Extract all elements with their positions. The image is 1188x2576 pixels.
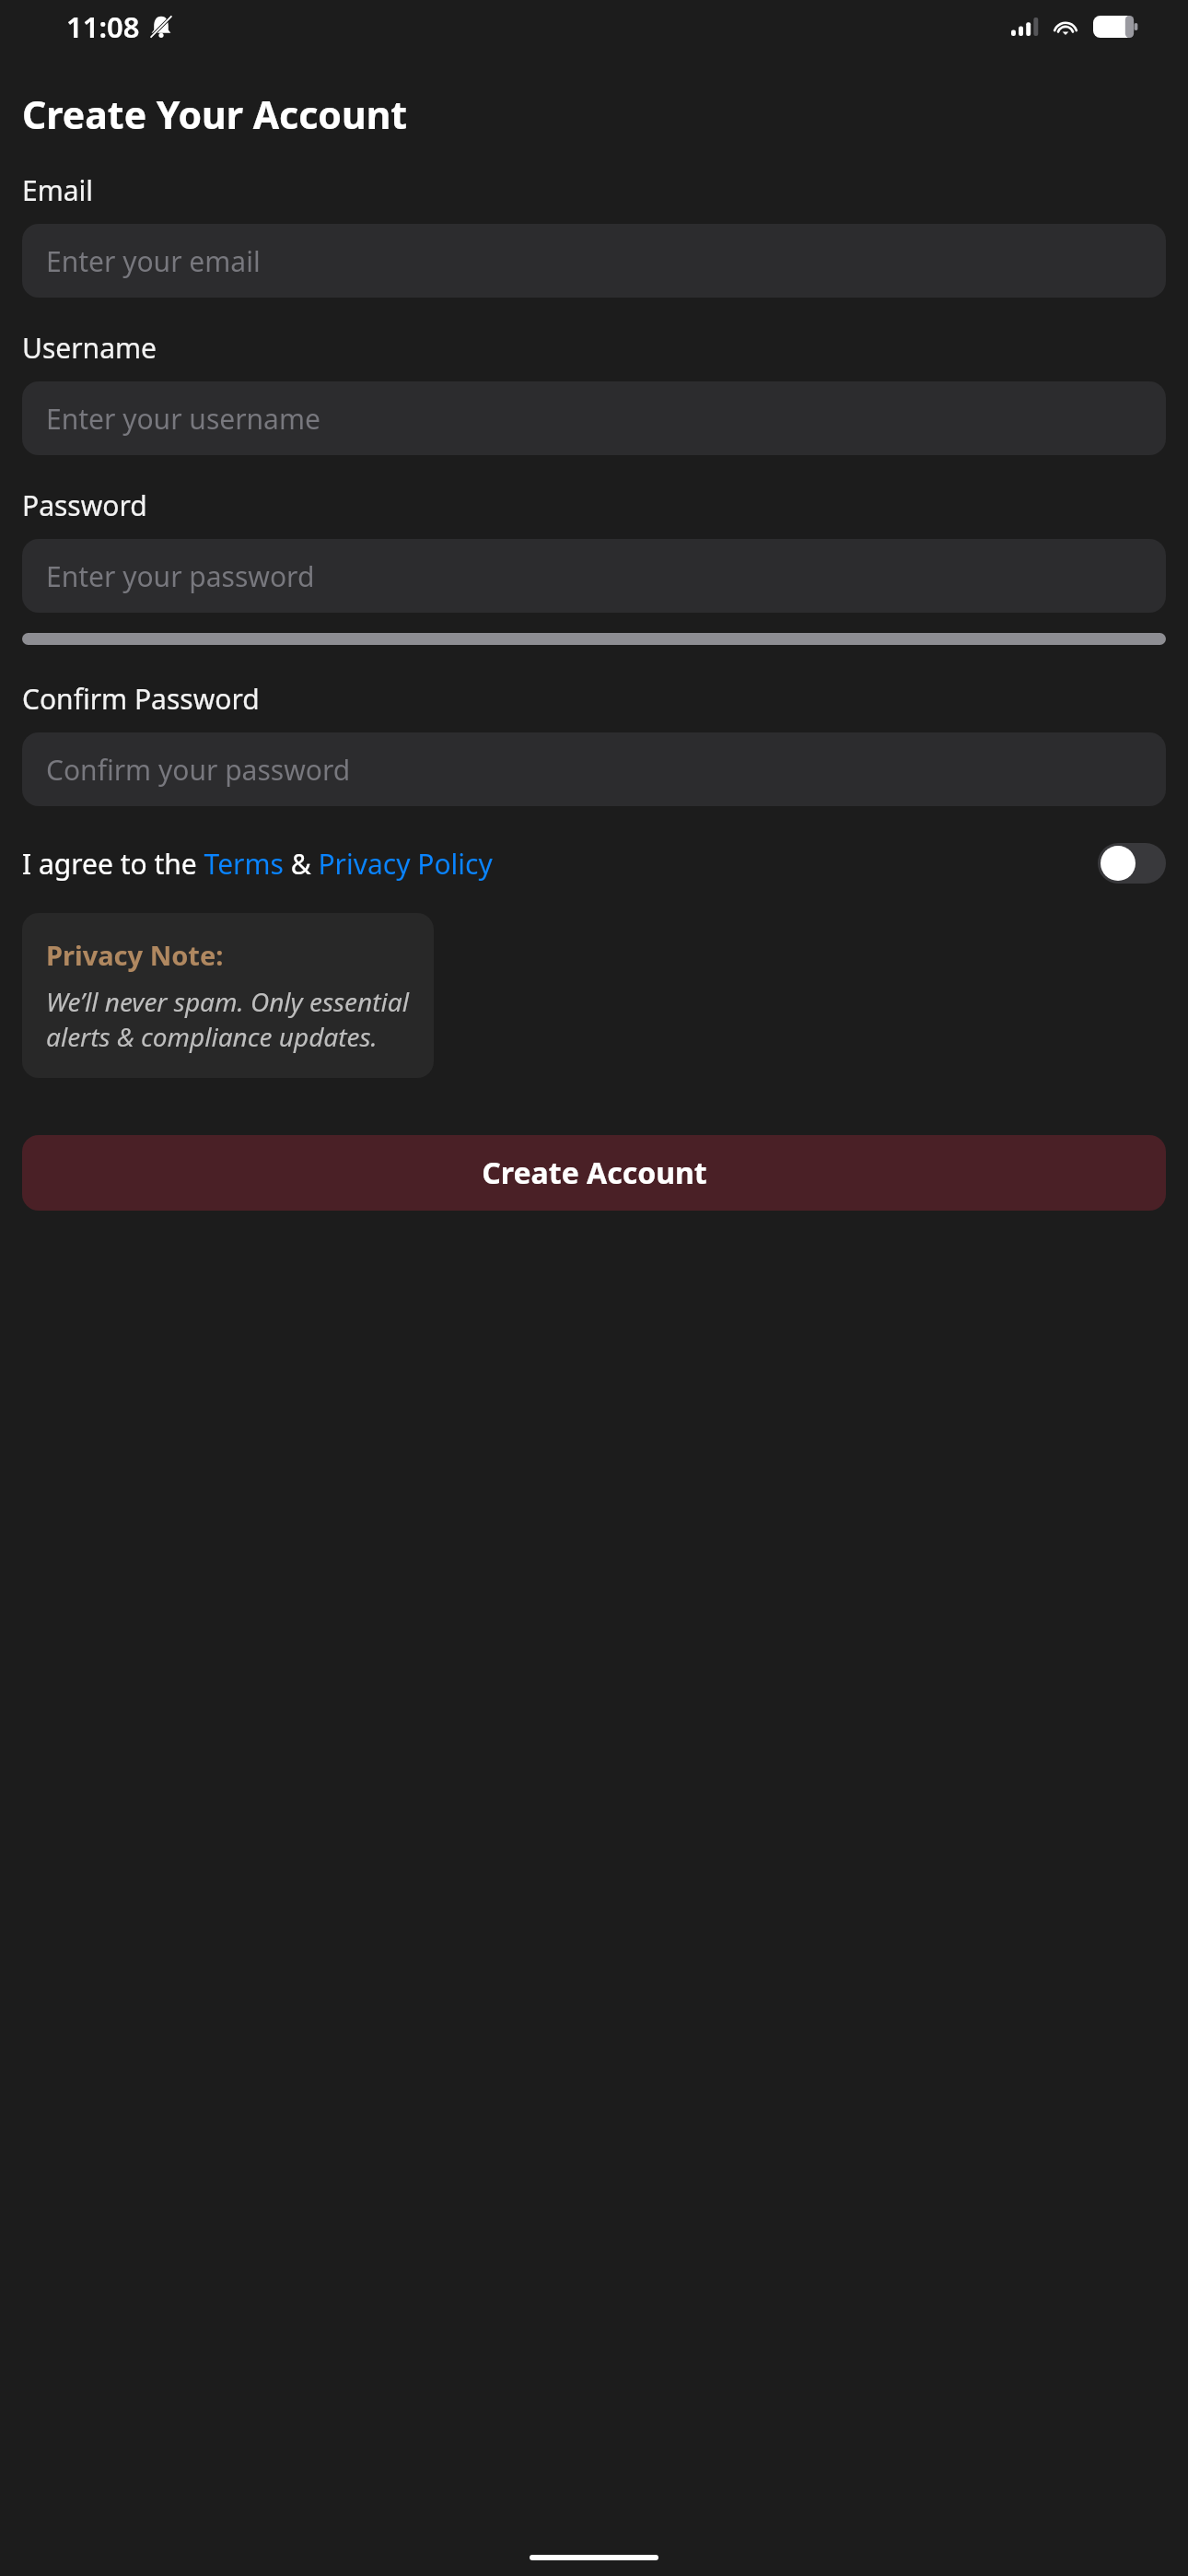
staticText: Username <box>22 329 157 367</box>
staticText: Confirm your password <box>46 751 351 789</box>
staticText: Create Your Account <box>22 88 408 140</box>
staticText: Privacy Note: <box>46 937 224 973</box>
button[interactable]: Enter your email <box>22 224 1166 298</box>
staticText: We’ll never spam. Only essential alerts … <box>46 984 410 1054</box>
staticText: Password <box>22 486 147 524</box>
button[interactable]: I agree to the Terms & Privacy Policy <box>22 845 1098 883</box>
staticText: Create Account <box>482 1153 707 1193</box>
button[interactable]: Enter your username <box>22 381 1166 455</box>
staticText: Enter your username <box>46 400 320 438</box>
button[interactable]: Agree to terms toggle <box>1098 843 1166 884</box>
button[interactable]: Confirm your password <box>22 732 1166 806</box>
staticText: Email <box>22 171 94 209</box>
staticText: Enter your email <box>46 242 261 280</box>
staticText: 11:08 <box>66 7 140 46</box>
staticText: Confirm Password <box>22 680 260 718</box>
button[interactable]: Enter your password <box>22 539 1166 613</box>
button[interactable]: Create Account <box>22 1135 1166 1211</box>
staticText: Enter your password <box>46 557 315 595</box>
